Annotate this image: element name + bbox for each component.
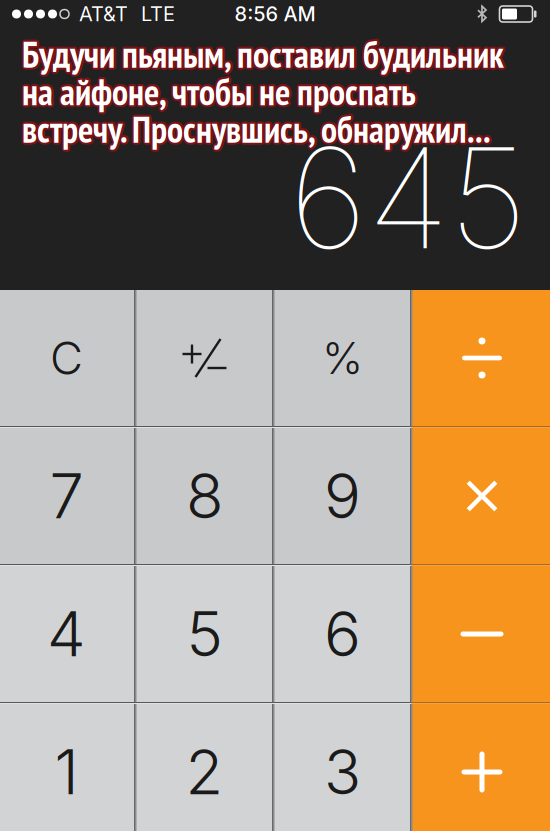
staticText: на айфоне, чтобы не проспать bbox=[24, 68, 418, 115]
staticText: 8:56 AM bbox=[234, 2, 315, 26]
staticText: Будучи пьяным, поставил будильник bbox=[20, 31, 502, 78]
staticText: C bbox=[50, 331, 83, 385]
staticText: 7 bbox=[49, 459, 83, 533]
staticText: встречу. Проснувшись, обнаружил... bbox=[24, 106, 493, 153]
staticText: Будучи пьяным, поставил будильник bbox=[24, 29, 506, 76]
staticText: 3 bbox=[324, 735, 361, 809]
staticText: на айфоне, чтобы не проспать bbox=[24, 70, 418, 117]
button[interactable]: 5 bbox=[136, 566, 272, 702]
button[interactable]: 8 bbox=[136, 428, 272, 564]
button[interactable]: Toggle sign bbox=[136, 290, 272, 426]
button[interactable]: 3 bbox=[274, 704, 410, 831]
staticText: на айфоне, чтобы не проспать bbox=[20, 67, 414, 113]
button[interactable]: Divide bbox=[412, 290, 550, 426]
button[interactable]: Add bbox=[412, 704, 550, 831]
button[interactable]: 6 bbox=[274, 566, 410, 702]
button[interactable]: Subtract bbox=[412, 566, 550, 702]
staticText: на айфоне, чтобы не проспать bbox=[20, 68, 414, 115]
staticText: 645 bbox=[289, 114, 527, 282]
staticText: Будучи пьяным, поставил будильник bbox=[22, 31, 504, 78]
staticText: Будучи пьяным, поставил будильник bbox=[24, 31, 506, 78]
button[interactable]: % bbox=[274, 290, 410, 426]
button[interactable]: 1 bbox=[0, 704, 134, 831]
button[interactable]: 9 bbox=[274, 428, 410, 564]
button[interactable]: 2 bbox=[136, 704, 272, 831]
staticText: встречу. Проснувшись, обнаружил... bbox=[24, 108, 493, 154]
staticText: встречу. Проснувшись, обнаружил... bbox=[20, 106, 489, 153]
staticText: на айфоне, чтобы не проспать bbox=[22, 66, 416, 113]
staticText: Будучи пьяным, поставил будильник bbox=[22, 29, 504, 75]
staticText: % bbox=[322, 331, 363, 385]
staticText: на айфоне, чтобы не проспать bbox=[24, 67, 418, 113]
staticText: на айфоне, чтобы не проспать bbox=[20, 70, 414, 117]
staticText: 4 bbox=[47, 597, 86, 671]
staticText: встречу. Проснувшись, обнаружил... bbox=[22, 104, 491, 150]
button[interactable]: 4 bbox=[0, 566, 134, 702]
button[interactable]: 7 bbox=[0, 428, 134, 564]
staticText: Будучи пьяным, поставил будильник bbox=[20, 33, 502, 79]
staticText: встречу. Проснувшись, обнаружил... bbox=[24, 104, 493, 151]
staticText: 9 bbox=[324, 459, 361, 533]
staticText: 2 bbox=[185, 735, 223, 809]
staticText: 5 bbox=[186, 597, 222, 671]
staticText: встречу. Проснувшись, обнаружил... bbox=[22, 108, 491, 155]
staticText: Будучи пьяным, поставил будильник bbox=[22, 33, 504, 80]
staticText: 6 bbox=[324, 597, 361, 671]
button[interactable]: C bbox=[0, 290, 134, 426]
button[interactable]: Multiply bbox=[412, 428, 550, 564]
staticText: Будучи пьяным, поставил будильник bbox=[24, 33, 506, 79]
staticText: встречу. Проснувшись, обнаружил... bbox=[22, 106, 491, 153]
staticText: LTE bbox=[141, 2, 175, 26]
staticText: встречу. Проснувшись, обнаружил... bbox=[20, 104, 489, 151]
staticText: 1 bbox=[54, 735, 78, 809]
staticText: на айфоне, чтобы не проспать bbox=[22, 71, 416, 117]
staticText: 8 bbox=[186, 459, 223, 533]
staticText: AT&T bbox=[79, 2, 128, 26]
staticText: Будучи пьяным, поставил будильник bbox=[20, 29, 502, 76]
staticText: встречу. Проснувшись, обнаружил... bbox=[20, 108, 489, 154]
staticText: на айфоне, чтобы не проспать bbox=[22, 68, 416, 115]
